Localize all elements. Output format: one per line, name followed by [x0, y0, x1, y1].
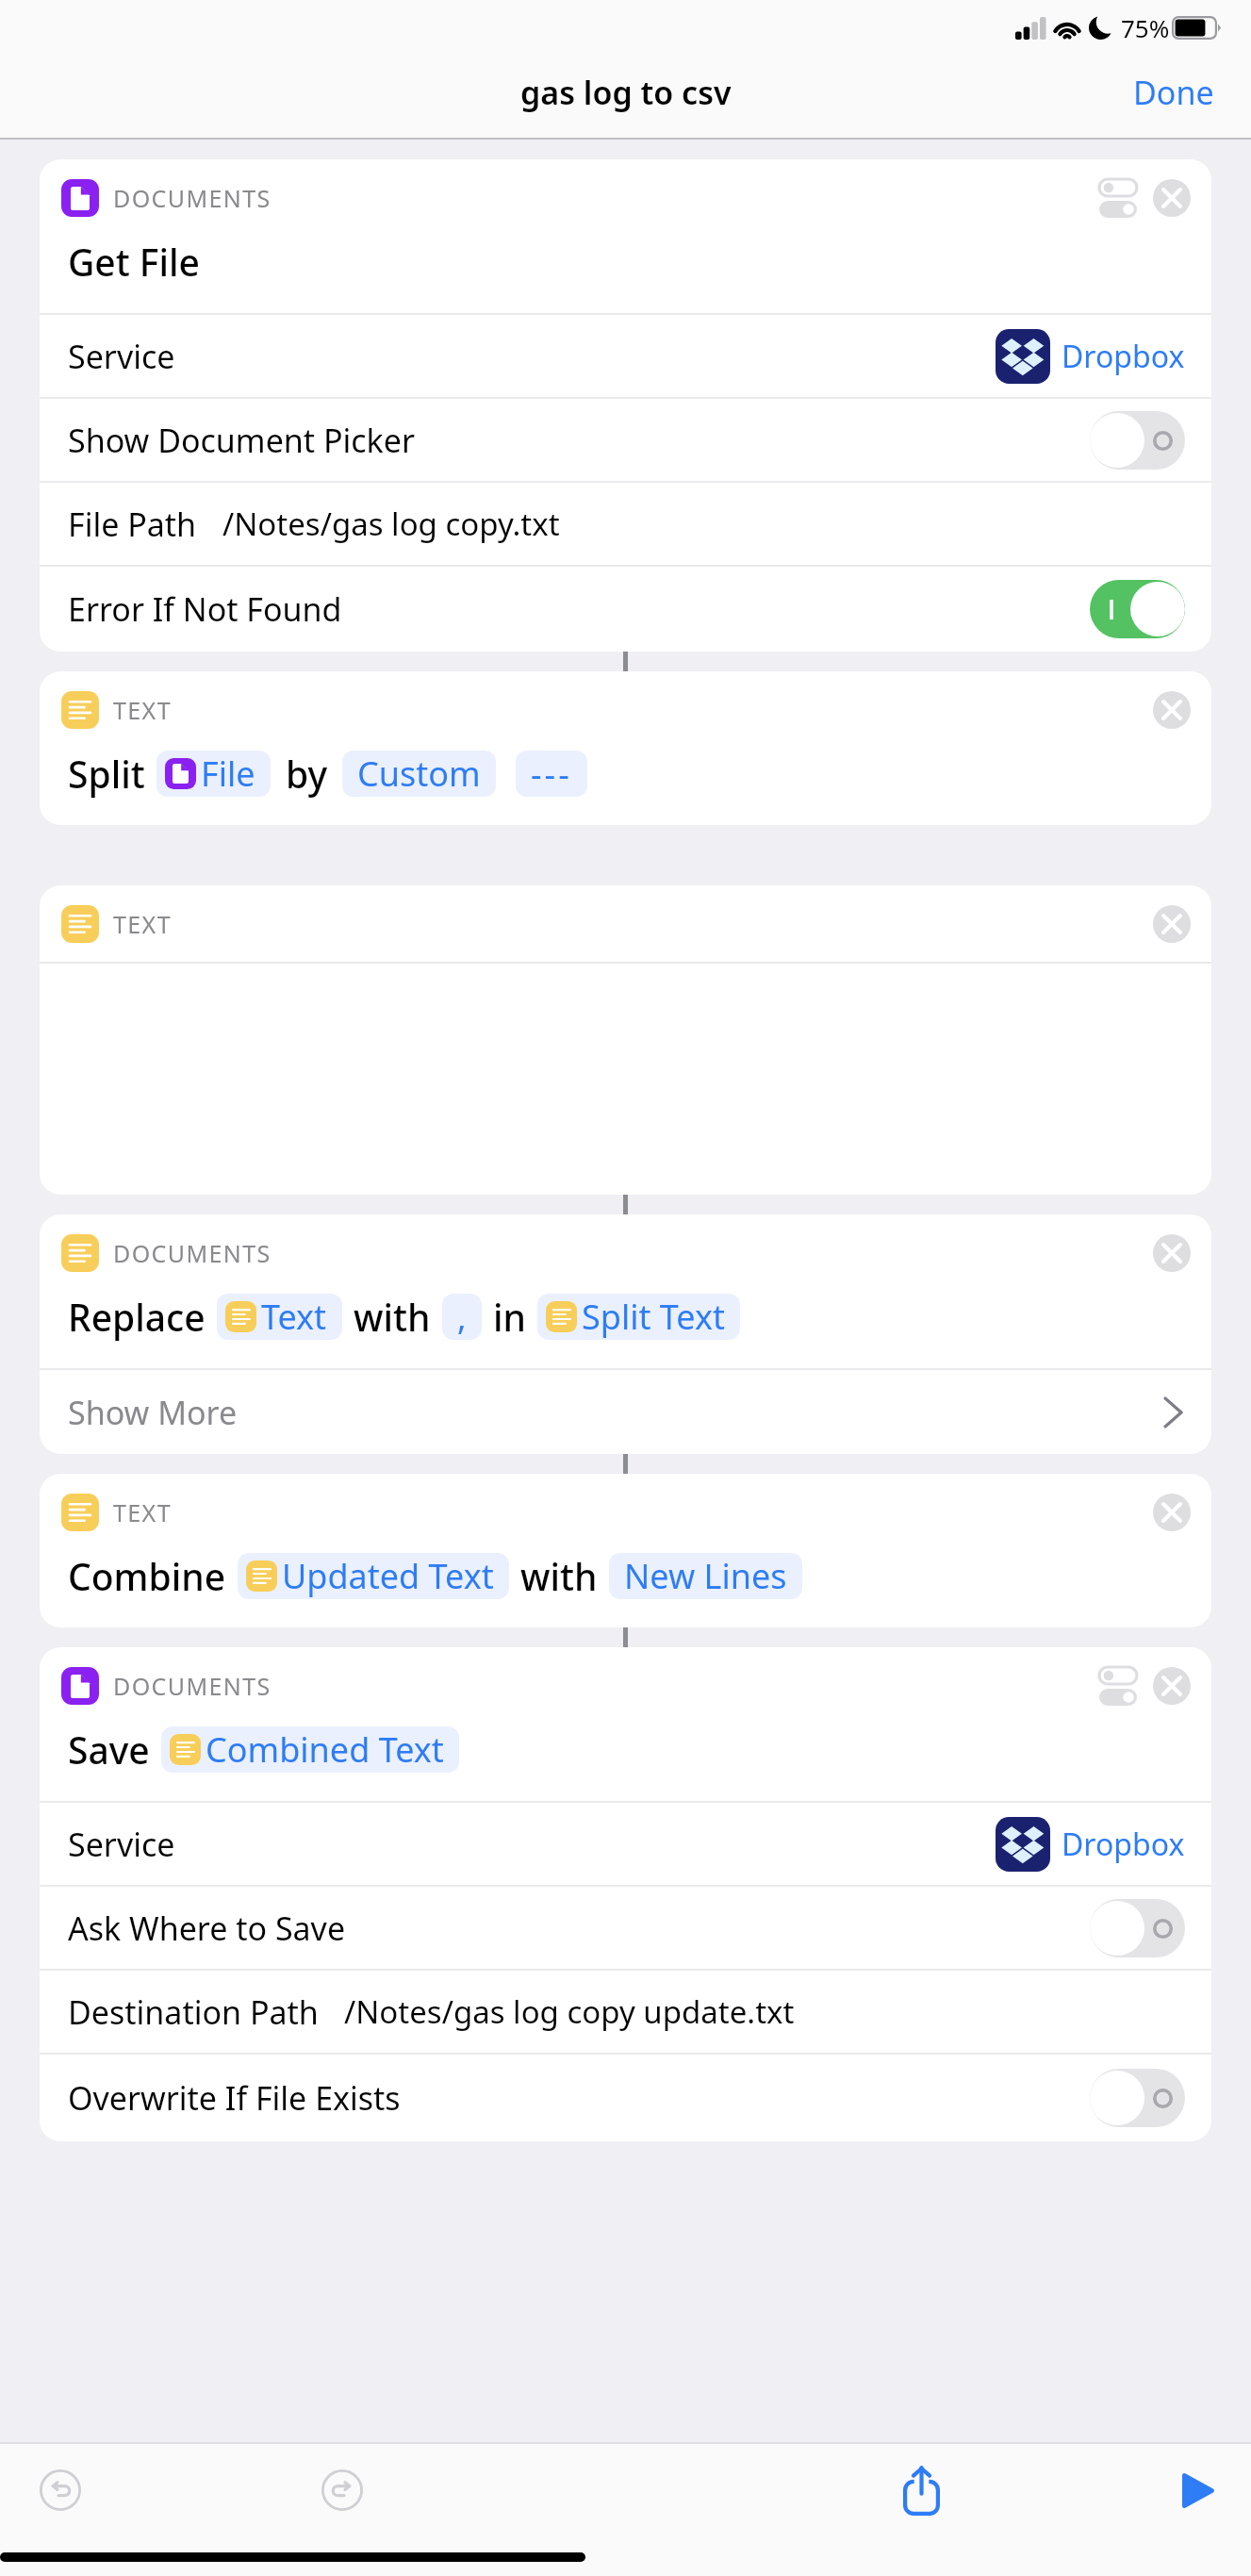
- staticText: in: [493, 1292, 526, 1342]
- staticText: TEXT: [113, 1496, 172, 1528]
- staticText: by: [286, 749, 327, 799]
- button[interactable]: Toggle off: [1090, 2069, 1185, 2127]
- button[interactable]: Updated Text: [238, 1553, 509, 1599]
- button[interactable]: Toggle off: [1090, 1899, 1185, 1957]
- staticText: Split: [68, 749, 145, 799]
- button[interactable]: Run shortcut: [1159, 2451, 1238, 2530]
- staticText: /Notes/gas log copy.txt: [222, 503, 560, 545]
- button[interactable]: Overwrite If File Exists: [40, 2055, 1211, 2141]
- button[interactable]: Show Document Picker: [40, 399, 1211, 481]
- button[interactable]: Action settings: [1096, 1663, 1140, 1709]
- staticText: Dropbox: [1062, 1824, 1185, 1865]
- staticText: TEXT: [113, 694, 172, 726]
- staticText: Service: [68, 1823, 175, 1866]
- staticText: DOCUMENTS: [113, 1237, 272, 1269]
- staticText: Ask Where to Save: [68, 1907, 346, 1950]
- button[interactable]: ,: [442, 1294, 482, 1340]
- button[interactable]: Remove action: [1153, 691, 1191, 729]
- button[interactable]: Destination Path: [40, 1971, 1211, 2053]
- button[interactable]: Service: [40, 315, 1211, 397]
- staticText: Combined Text: [206, 1726, 444, 1773]
- button[interactable]: Remove action: [1153, 905, 1191, 943]
- staticText: Service: [68, 335, 175, 378]
- button[interactable]: Redo: [303, 2451, 382, 2530]
- button[interactable]: Show More: [40, 1370, 1211, 1454]
- button[interactable]: Done: [1105, 58, 1251, 135]
- button[interactable]: Undo: [21, 2451, 100, 2530]
- staticText: New Lines: [624, 1553, 787, 1599]
- staticText: Dropbox: [1062, 336, 1185, 377]
- staticText: File Path: [68, 503, 197, 546]
- staticText: Combine: [68, 1551, 226, 1601]
- button[interactable]: Error If Not Found: [40, 567, 1211, 652]
- staticText: Show More: [68, 1391, 238, 1434]
- button[interactable]: File Path: [40, 483, 1211, 565]
- staticText: Text: [261, 1294, 327, 1340]
- staticText: /Notes/gas log copy update.txt: [344, 1990, 795, 2033]
- button[interactable]: Split Text: [537, 1294, 740, 1340]
- staticText: Split Text: [582, 1294, 725, 1340]
- button[interactable]: Combined Text: [161, 1726, 459, 1773]
- staticText: File: [201, 751, 255, 797]
- button[interactable]: New Lines: [609, 1553, 802, 1599]
- button[interactable]: Action settings: [1096, 175, 1140, 221]
- button[interactable]: Toggle on: [1090, 580, 1185, 638]
- button[interactable]: Share: [881, 2451, 961, 2530]
- button[interactable]: Service: [40, 1803, 1211, 1885]
- staticText: with: [520, 1551, 598, 1601]
- button[interactable]: Text: [217, 1294, 342, 1340]
- button[interactable]: ---: [516, 751, 587, 797]
- staticText: DOCUMENTS: [113, 1670, 272, 1702]
- staticText: gas log to csv: [520, 71, 732, 114]
- button[interactable]: Remove action: [1153, 1494, 1191, 1531]
- staticText: Get File: [68, 237, 200, 287]
- staticText: DOCUMENTS: [113, 182, 272, 214]
- staticText: Done: [1133, 71, 1214, 114]
- button[interactable]: File: [156, 751, 271, 797]
- button[interactable]: Remove action: [1153, 179, 1191, 217]
- button[interactable]: Remove action: [1153, 1234, 1191, 1272]
- button[interactable]: Remove action: [1153, 1667, 1191, 1705]
- button[interactable]: Ask Where to Save: [40, 1887, 1211, 1969]
- staticText: ---: [531, 751, 572, 797]
- staticText: with: [354, 1292, 431, 1342]
- staticText: Save: [68, 1725, 150, 1775]
- staticText: Destination Path: [68, 1990, 319, 2034]
- button[interactable]: Custom: [342, 751, 496, 797]
- staticText: Error If Not Found: [68, 587, 342, 631]
- staticText: Replace: [68, 1292, 206, 1342]
- staticText: TEXT: [113, 908, 172, 940]
- staticText: ,: [457, 1294, 467, 1340]
- staticText: Show Document Picker: [68, 419, 415, 462]
- staticText: 75%: [1121, 11, 1170, 44]
- staticText: Overwrite If File Exists: [68, 2076, 401, 2120]
- staticText: Updated Text: [282, 1553, 494, 1599]
- button[interactable]: Toggle off: [1090, 411, 1185, 470]
- staticText: Custom: [357, 751, 481, 797]
